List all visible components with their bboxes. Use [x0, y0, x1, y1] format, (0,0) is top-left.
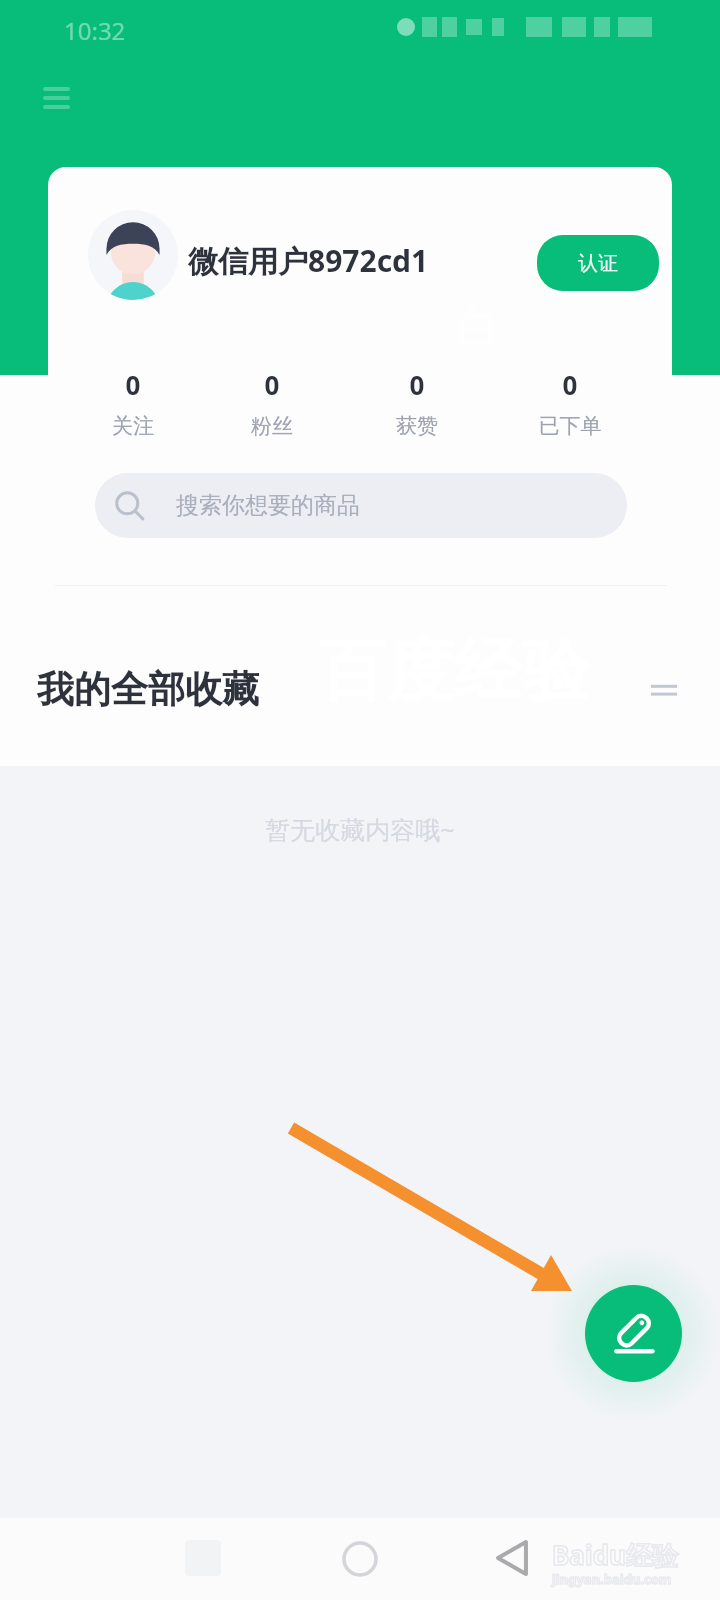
button[interactable]: 认证 [537, 235, 659, 291]
staticText: 粉丝 [222, 413, 322, 439]
staticText: 0 [520, 367, 620, 402]
button[interactable]: Back [495, 1540, 531, 1576]
button[interactable]: 搜索你想要的商品 [95, 473, 627, 538]
staticText: 关注 [83, 413, 183, 439]
staticText: 已下单 [520, 413, 620, 439]
staticText: jingyan.baidu.com [552, 1570, 672, 1588]
button[interactable]: Home [342, 1541, 378, 1577]
staticText: 搜索你想要的商品 [176, 491, 360, 520]
staticText: 10:32 [64, 14, 126, 47]
button[interactable]: 0 [83, 367, 183, 453]
staticText: 0 [222, 367, 322, 402]
staticText: 我的全部收藏 [37, 666, 259, 713]
staticText: Baidu经验 [552, 1537, 678, 1573]
staticText: 获赞 [367, 413, 467, 439]
staticText: 0 [83, 367, 183, 402]
staticText: 微信用户8972cd1 [188, 240, 429, 281]
button[interactable]: 0 [520, 367, 620, 453]
button[interactable]: 0 [222, 367, 322, 453]
button[interactable]: Menu [30, 72, 82, 124]
button[interactable]: 0 [367, 367, 467, 453]
staticText: 暂无收藏内容哦~ [0, 812, 720, 846]
button[interactable]: Edit [585, 1285, 682, 1382]
button[interactable]: Filter [642, 668, 686, 712]
staticText: 0 [367, 367, 467, 402]
staticText: 认证 [578, 251, 618, 276]
